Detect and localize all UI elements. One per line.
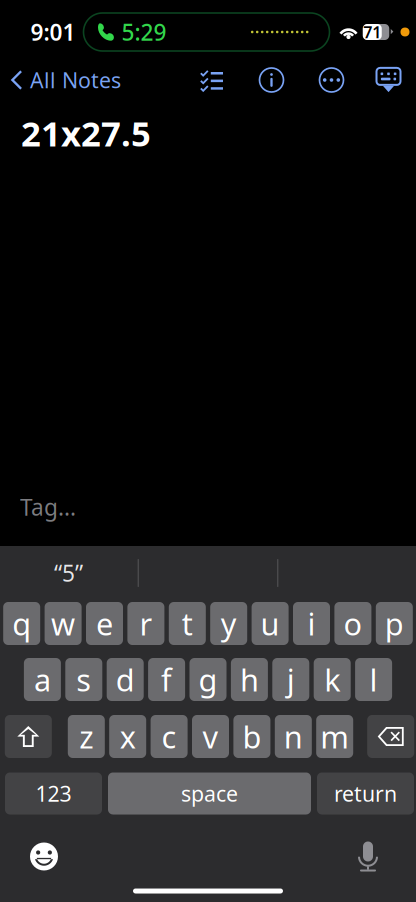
staticText: k — [324, 659, 340, 700]
button[interactable]: z — [68, 715, 105, 758]
staticText: y — [221, 603, 237, 644]
button[interactable]: y — [210, 602, 247, 645]
button[interactable]: c — [151, 715, 188, 758]
staticText: 71 — [363, 21, 381, 43]
staticText: w — [51, 603, 75, 644]
staticText: Tag... — [20, 492, 76, 522]
button[interactable]: Emoji Keyboard — [27, 839, 61, 873]
button[interactable]: Delete — [367, 715, 414, 758]
button[interactable]: s — [65, 658, 102, 701]
button[interactable]: w — [45, 602, 82, 645]
button[interactable]: v — [192, 715, 229, 758]
button[interactable]: f — [148, 658, 185, 701]
button[interactable]: a — [24, 658, 61, 701]
button[interactable]: b — [233, 715, 270, 758]
button[interactable]: o — [334, 602, 371, 645]
staticText: t — [182, 603, 193, 644]
button[interactable]: m — [316, 715, 353, 758]
button[interactable]: e — [86, 602, 123, 645]
button[interactable]: j — [272, 658, 309, 701]
staticText: d — [116, 659, 135, 700]
button[interactable]: Tag... — [0, 486, 76, 528]
button[interactable]: d — [107, 658, 144, 701]
button[interactable]: g — [189, 658, 226, 701]
staticText: b — [242, 716, 261, 757]
staticText: c — [162, 716, 177, 757]
button[interactable]: l — [355, 658, 392, 701]
button[interactable]: r — [127, 602, 164, 645]
button[interactable]: p — [376, 602, 413, 645]
staticText: f — [161, 659, 172, 700]
button[interactable]: All Notes — [0, 58, 121, 102]
button[interactable]: u — [252, 602, 289, 645]
staticText: o — [343, 603, 362, 644]
staticText: h — [240, 659, 259, 700]
button[interactable]: n — [275, 715, 312, 758]
staticText: e — [96, 603, 113, 644]
button[interactable]: space — [108, 772, 311, 814]
staticText: x — [120, 716, 136, 757]
staticText: space — [181, 779, 238, 808]
staticText: 9:01 — [30, 17, 75, 47]
staticText: z — [79, 716, 93, 757]
staticText: q — [12, 603, 31, 644]
staticText: l — [370, 659, 378, 700]
staticText: i — [307, 603, 315, 644]
staticText: p — [385, 603, 404, 644]
button[interactable]: i — [293, 602, 330, 645]
button[interactable]: t — [169, 602, 206, 645]
button[interactable]: h — [231, 658, 268, 701]
button[interactable]: q — [3, 602, 40, 645]
staticText: 21x27.5 — [21, 110, 151, 156]
button[interactable]: More — [318, 66, 345, 93]
button[interactable]: Dictation — [351, 839, 385, 873]
button[interactable]: Checklist — [200, 66, 223, 93]
staticText: “5” — [54, 558, 83, 588]
staticText: r — [139, 603, 152, 644]
button[interactable]: Shift — [5, 715, 52, 758]
staticText: v — [202, 716, 218, 757]
staticText: j — [287, 659, 295, 700]
button[interactable]: “5” — [0, 548, 138, 598]
staticText: m — [320, 716, 349, 757]
button[interactable]: x — [109, 715, 146, 758]
button[interactable]: Note Info — [258, 66, 285, 93]
staticText: g — [198, 659, 217, 700]
staticText: u — [261, 603, 280, 644]
staticText: return — [334, 779, 397, 808]
button[interactable]: return — [317, 772, 414, 814]
staticText: a — [34, 659, 51, 700]
button[interactable]: Hide Keyboard — [375, 66, 402, 94]
staticText: 123 — [35, 779, 71, 808]
staticText: s — [76, 659, 91, 700]
staticText: n — [284, 716, 303, 757]
button[interactable]: k — [314, 658, 351, 701]
staticText: 5:29 — [121, 17, 166, 47]
button[interactable]: 123 — [5, 772, 102, 814]
staticText: All Notes — [30, 66, 121, 94]
